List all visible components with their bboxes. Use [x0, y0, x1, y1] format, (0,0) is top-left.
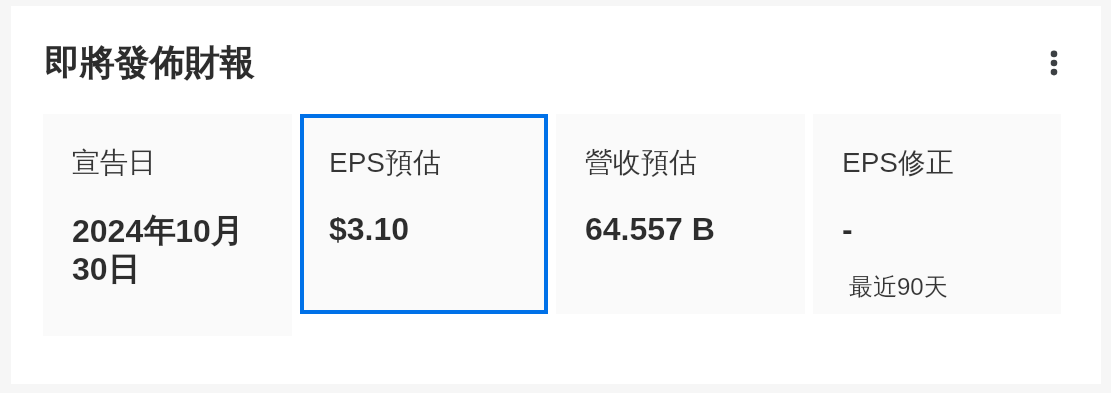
- button[interactable]: EPS修正: [813, 114, 1061, 314]
- staticText: 64.557 B: [585, 211, 715, 247]
- staticText: EPS預估: [329, 145, 442, 180]
- staticText: 即將發佈財報: [44, 41, 254, 85]
- staticText: 2024年10月 30日: [72, 211, 243, 289]
- button[interactable]: EPS預估: [300, 114, 548, 314]
- staticText: 營收預估: [585, 145, 697, 180]
- staticText: -: [842, 211, 853, 247]
- button[interactable]: More options: [1022, 31, 1086, 95]
- staticText: 宣告日: [72, 145, 156, 180]
- staticText: 最近90天: [849, 272, 948, 302]
- button[interactable]: 營收預估: [556, 114, 805, 314]
- staticText: $3.10: [329, 211, 410, 247]
- staticText: EPS修正: [842, 145, 955, 180]
- button[interactable]: 宣告日: [43, 114, 292, 336]
